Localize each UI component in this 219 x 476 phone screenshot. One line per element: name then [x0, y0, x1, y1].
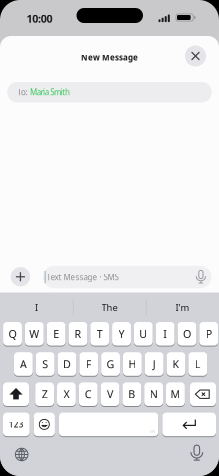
staticText: I	[35, 301, 38, 314]
button[interactable]: N	[144, 382, 163, 406]
staticText: S	[42, 357, 48, 371]
button[interactable]: Next keyboard	[14, 447, 29, 462]
staticText: H	[128, 357, 136, 371]
staticText: M	[170, 387, 180, 401]
button[interactable]: R	[68, 322, 87, 346]
button[interactable]: C	[79, 382, 98, 406]
staticText: New Message	[81, 52, 138, 63]
staticText: 10:00	[26, 11, 53, 26]
staticText: W	[29, 327, 39, 341]
button[interactable]: Emoji	[34, 413, 55, 436]
button[interactable]: E	[47, 322, 66, 346]
staticText: Text Message · SMS	[46, 272, 118, 282]
staticText: J	[153, 357, 156, 371]
staticText: C	[85, 387, 92, 401]
button[interactable]: H	[123, 352, 142, 376]
button[interactable]: The	[74, 297, 144, 318]
button[interactable]: Delete	[190, 382, 216, 406]
staticText: V	[107, 387, 113, 401]
staticText: The	[101, 301, 117, 314]
button[interactable]: Q	[3, 322, 22, 346]
button[interactable]: D	[57, 352, 76, 376]
staticText: Q	[8, 327, 16, 341]
button[interactable]: I'm	[147, 297, 217, 318]
button[interactable]: F	[79, 352, 98, 376]
button[interactable]: Space	[59, 413, 158, 436]
button[interactable]: I	[1, 297, 71, 318]
button[interactable]: Y	[112, 322, 131, 346]
button[interactable]: Shift	[3, 382, 29, 406]
button[interactable]: L	[188, 352, 207, 376]
button[interactable]: Close	[185, 45, 206, 66]
staticText: N	[150, 387, 158, 401]
staticText: K	[172, 357, 179, 371]
staticText: G	[107, 357, 115, 371]
staticText: T	[97, 327, 103, 341]
button[interactable]: S	[36, 352, 55, 376]
staticText: I'm	[175, 301, 189, 314]
staticText: L	[195, 357, 201, 371]
staticText: O	[183, 327, 191, 341]
button[interactable]: U	[134, 322, 153, 346]
staticText: D	[63, 357, 71, 371]
staticText: P	[206, 327, 212, 341]
staticText: Z	[42, 387, 48, 401]
button[interactable]: P	[199, 322, 218, 346]
staticText: X	[63, 387, 69, 401]
button[interactable]: Return	[162, 413, 216, 436]
button[interactable]: W	[25, 322, 44, 346]
staticText: 123	[9, 419, 24, 430]
button[interactable]: To:	[7, 82, 212, 102]
button[interactable]: Add attachment	[11, 267, 30, 286]
button[interactable]: T	[90, 322, 109, 346]
button[interactable]: G	[101, 352, 120, 376]
button[interactable]: V	[101, 382, 119, 406]
button[interactable]: A	[14, 352, 33, 376]
staticText: Y	[118, 327, 124, 341]
staticText: E	[53, 327, 59, 341]
staticText: R	[74, 327, 81, 341]
button[interactable]: Z	[35, 382, 54, 406]
staticText: F	[86, 357, 92, 371]
button[interactable]: K	[167, 352, 185, 376]
staticText: Maria Smith	[30, 87, 70, 97]
button[interactable]: M	[166, 382, 185, 406]
button[interactable]: Dictation	[189, 444, 204, 461]
staticText: To:	[17, 87, 28, 97]
staticText: EN	[150, 429, 155, 434]
button[interactable]: Numbers	[3, 413, 30, 436]
button[interactable]: B	[122, 382, 141, 406]
staticText: B	[128, 387, 135, 401]
button[interactable]: Text Message · SMS	[43, 266, 211, 288]
button[interactable]: O	[177, 322, 196, 346]
staticText: A	[20, 357, 27, 371]
button[interactable]: X	[57, 382, 76, 406]
staticText: I	[163, 327, 167, 341]
button[interactable]: I	[156, 322, 175, 346]
staticText: U	[139, 327, 147, 341]
button[interactable]: J	[145, 352, 164, 376]
